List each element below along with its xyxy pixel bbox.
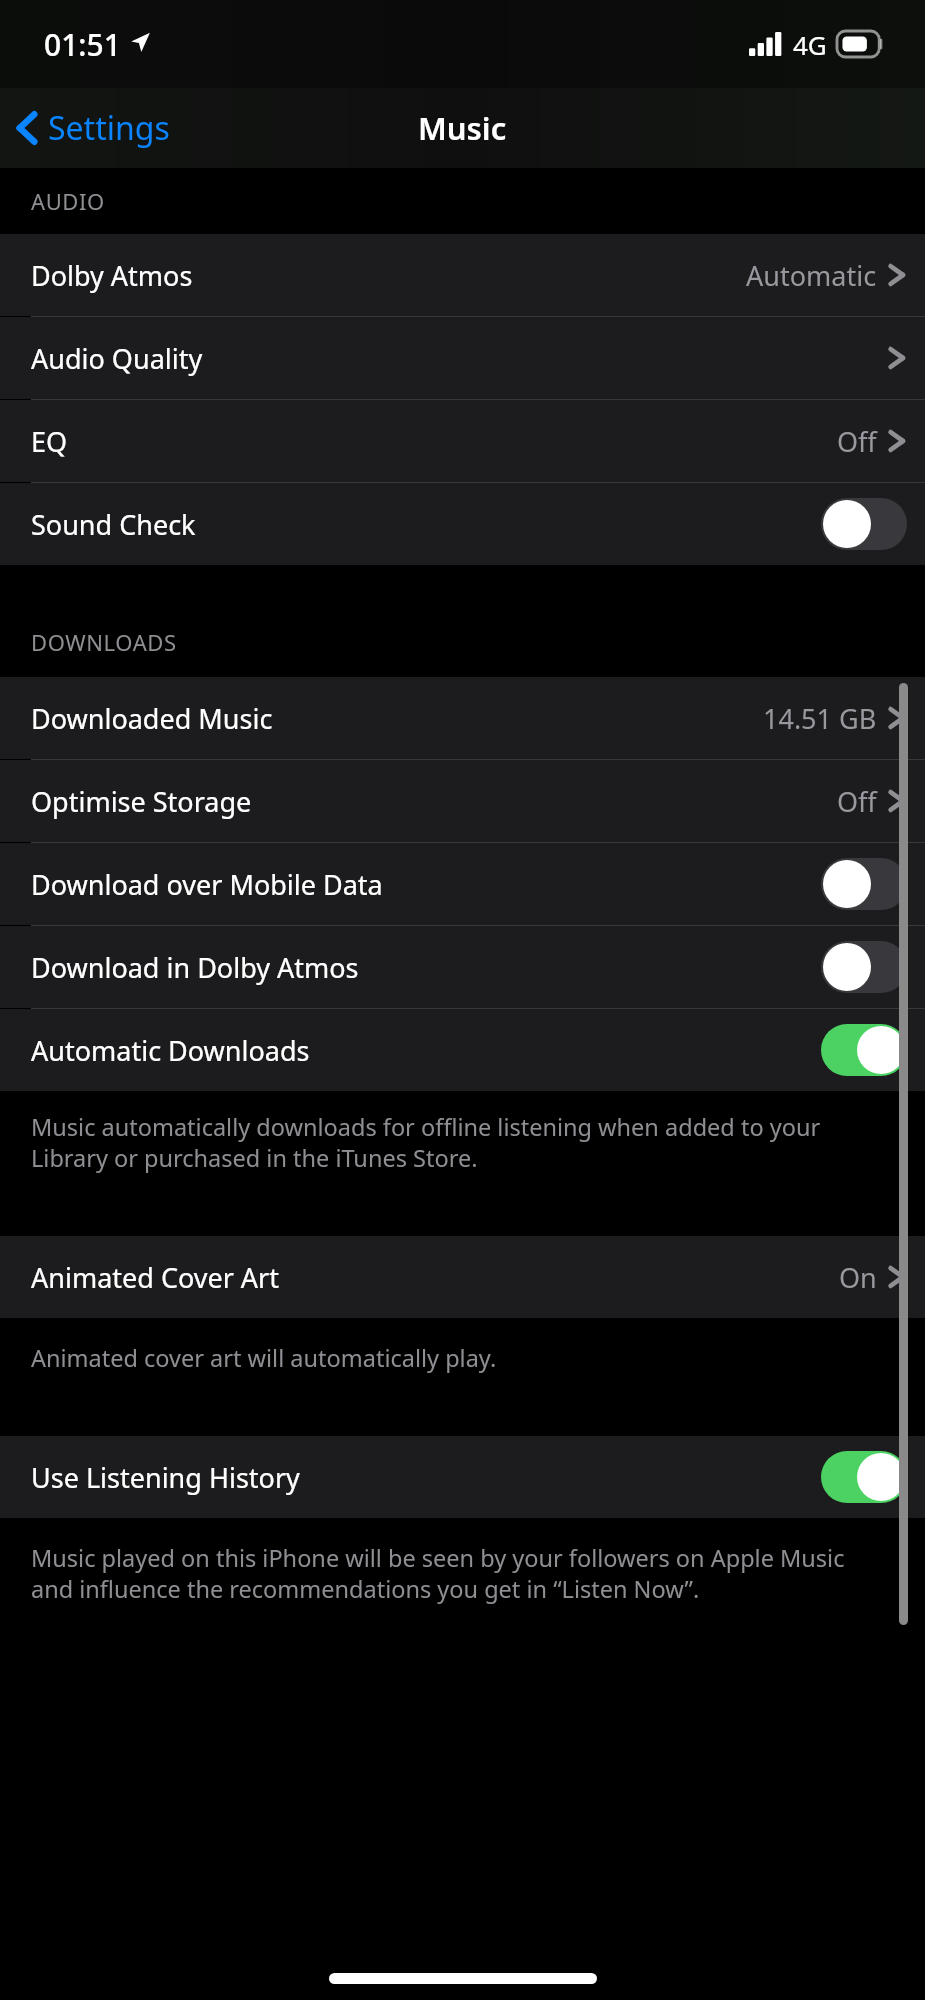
button[interactable]: Toggle on xyxy=(821,1451,907,1503)
staticText: Music automatically downloads for offlin… xyxy=(31,1111,885,1174)
button[interactable]: Dolby Atmos xyxy=(0,234,925,316)
button[interactable]: Toggle off xyxy=(821,858,907,910)
staticText: AUDIO xyxy=(31,186,105,216)
button[interactable]: Download in Dolby Atmos xyxy=(0,926,925,1008)
staticText: DOWNLOADS xyxy=(31,627,177,657)
button[interactable]: Toggle off xyxy=(821,498,907,550)
staticText: Automatic Downloads xyxy=(31,1032,310,1069)
button[interactable]: Downloaded Music xyxy=(0,677,925,759)
button[interactable]: Toggle on xyxy=(821,1024,907,1076)
staticText: Sound Check xyxy=(31,506,196,543)
staticText: Off xyxy=(837,783,877,820)
button[interactable]: Automatic Downloads xyxy=(0,1009,925,1091)
staticText: Music played on this iPhone will be seen… xyxy=(31,1542,885,1605)
staticText: Optimise Storage xyxy=(31,783,252,820)
staticText: Use Listening History xyxy=(31,1459,300,1496)
staticText: 4G xyxy=(793,27,827,62)
button[interactable]: Optimise Storage xyxy=(0,760,925,842)
button[interactable]: Settings xyxy=(0,88,925,168)
staticText: Animated cover art will automatically pl… xyxy=(31,1342,497,1374)
staticText: Automatic xyxy=(746,257,877,294)
staticText: Download in Dolby Atmos xyxy=(31,949,359,986)
staticText: Dolby Atmos xyxy=(31,257,193,294)
staticText: Audio Quality xyxy=(31,340,203,377)
staticText: Off xyxy=(837,423,877,460)
button[interactable]: Toggle off xyxy=(821,941,907,993)
staticText: Download over Mobile Data xyxy=(31,866,383,903)
staticText: EQ xyxy=(31,423,68,460)
button[interactable]: Sound Check xyxy=(0,483,925,565)
button[interactable]: EQ xyxy=(0,400,925,482)
staticText: 01:51 xyxy=(44,24,121,65)
staticText: Settings xyxy=(48,106,170,150)
button[interactable]: Use Listening History xyxy=(0,1436,925,1518)
button[interactable]: Animated Cover Art xyxy=(0,1236,925,1318)
staticText: Animated Cover Art xyxy=(31,1259,280,1296)
button[interactable]: Audio Quality xyxy=(0,317,925,399)
staticText: Downloaded Music xyxy=(31,700,273,737)
staticText: 14.51 GB xyxy=(763,700,877,737)
button[interactable]: Download over Mobile Data xyxy=(0,843,925,925)
staticText: Music xyxy=(418,107,507,149)
staticText: On xyxy=(839,1259,877,1296)
